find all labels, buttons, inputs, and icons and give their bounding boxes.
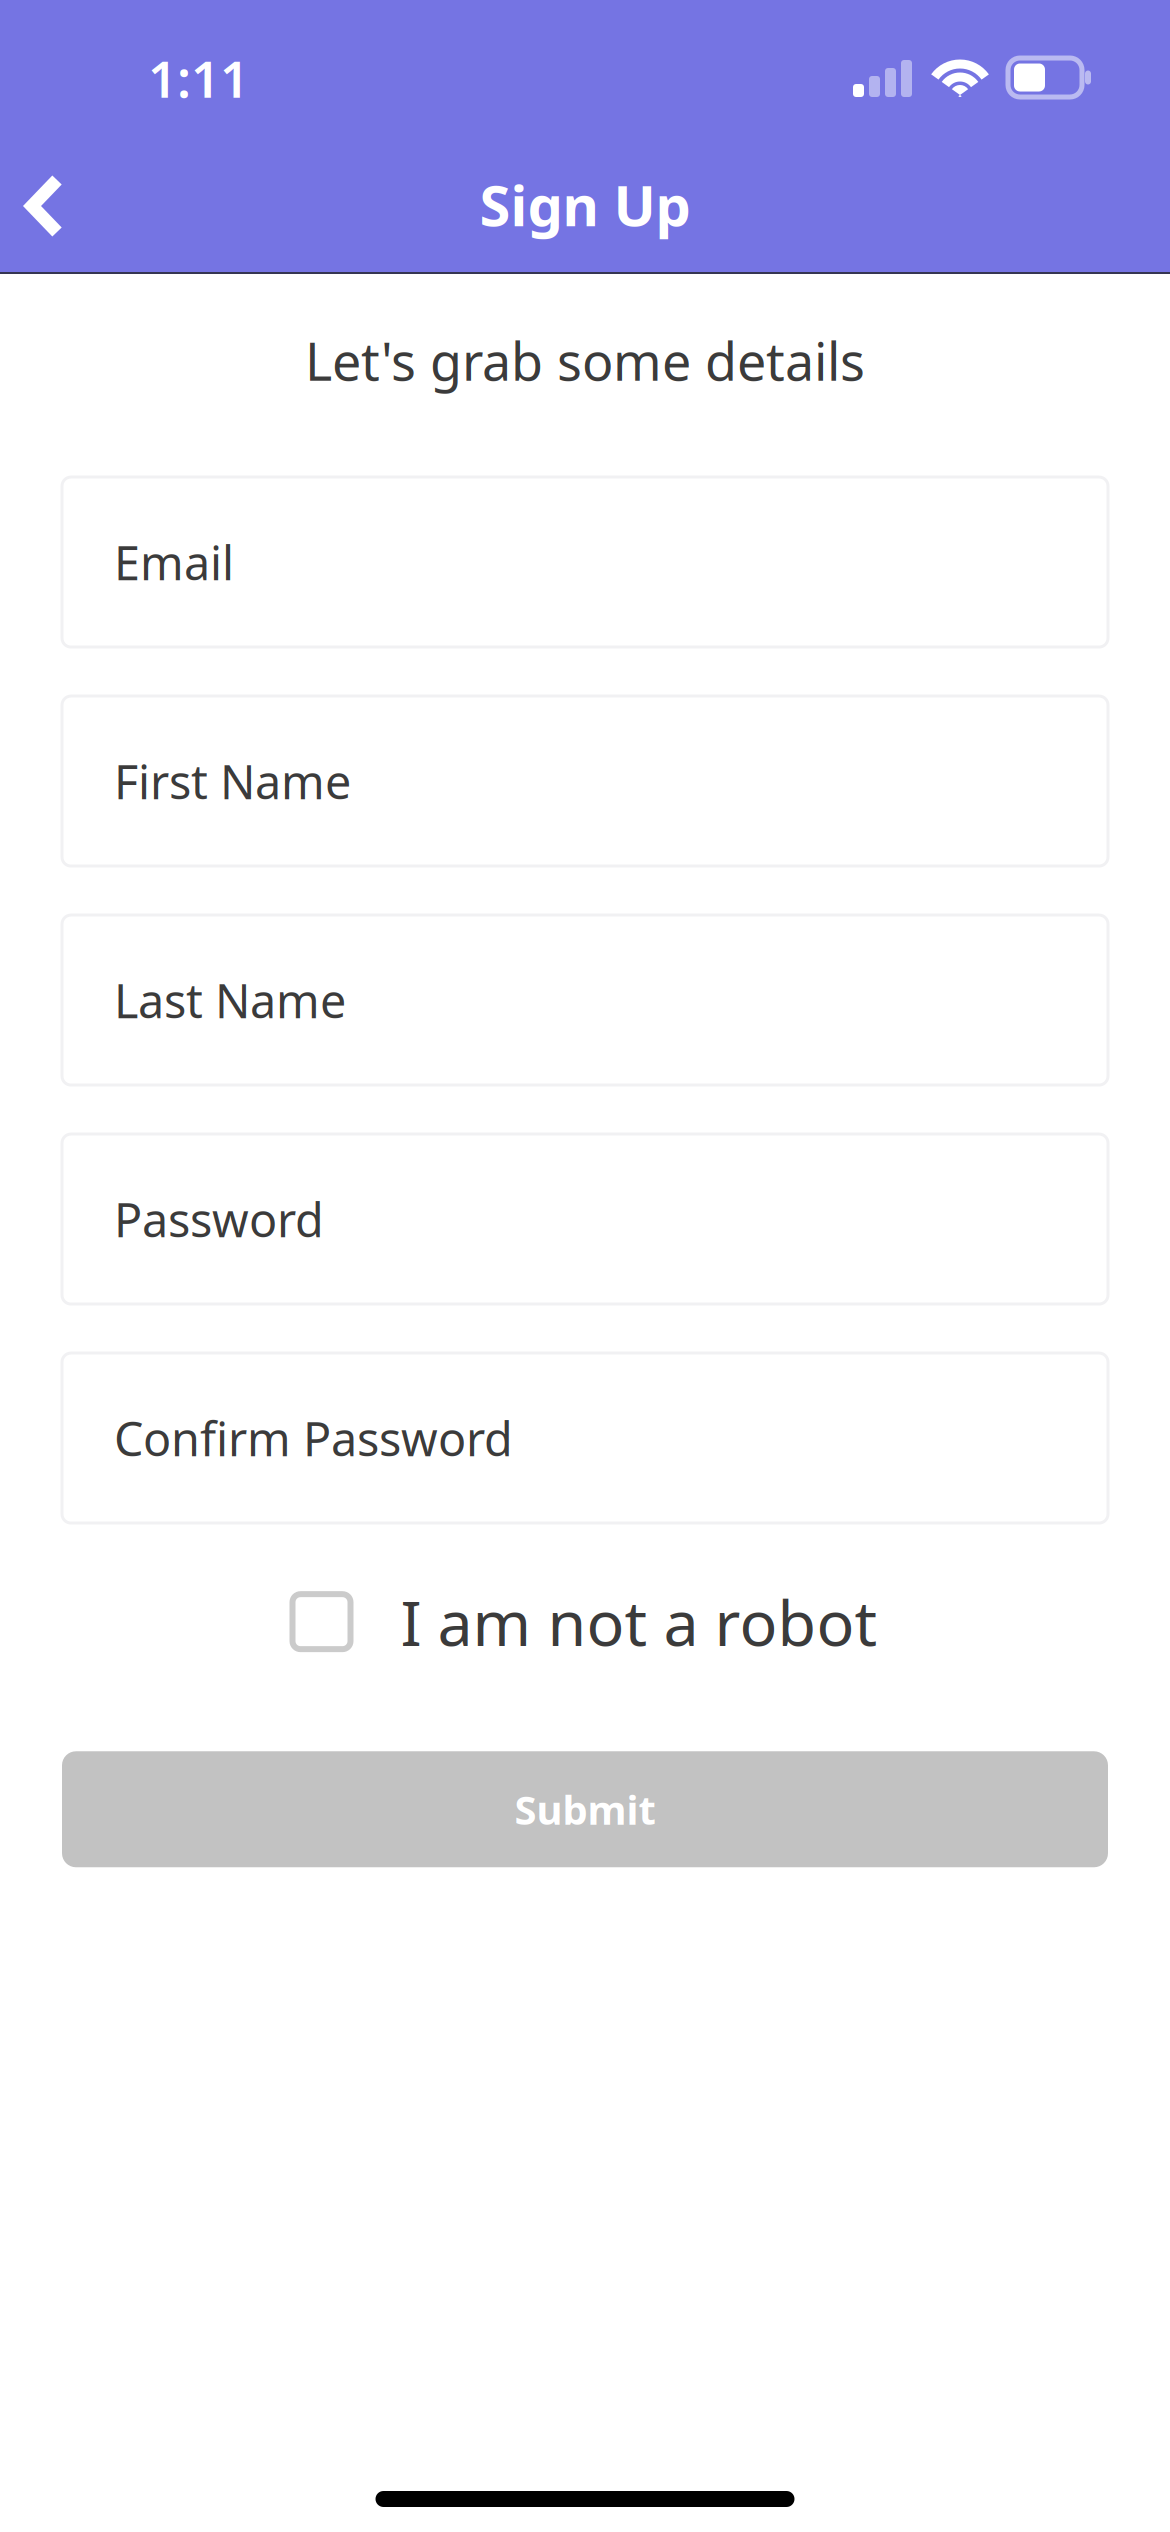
button[interactable]: Back xyxy=(0,137,94,253)
staticText: Submit xyxy=(514,1783,655,1836)
staticText: Sign Up xyxy=(479,167,690,242)
staticText: Password xyxy=(114,1188,324,1250)
button[interactable]: Email xyxy=(62,477,1108,647)
staticText: Last Name xyxy=(114,969,346,1031)
staticText: Email xyxy=(114,531,234,593)
staticText: I am not a robot xyxy=(400,1580,877,1663)
button[interactable]: Submit xyxy=(62,1751,1108,1867)
staticText: Let's grab some details xyxy=(305,326,865,395)
button[interactable]: Password xyxy=(62,1134,1108,1304)
button[interactable]: Last Name xyxy=(62,915,1108,1085)
button[interactable]: First Name xyxy=(62,696,1108,866)
button[interactable]: I am not a robot xyxy=(292,1568,877,1675)
staticText: 1:11 xyxy=(148,44,249,112)
button[interactable]: Confirm Password xyxy=(62,1353,1108,1523)
staticText: First Name xyxy=(114,750,351,812)
staticText: Confirm Password xyxy=(114,1407,513,1469)
